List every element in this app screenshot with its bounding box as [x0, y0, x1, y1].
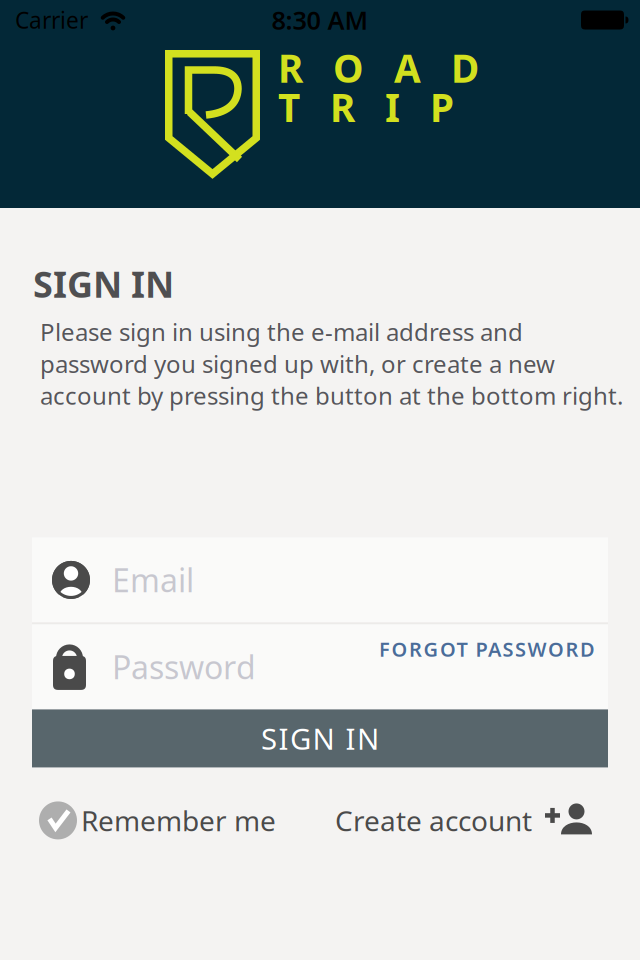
staticText: O: [333, 42, 364, 93]
staticText: R: [278, 42, 303, 93]
staticText: A: [394, 42, 421, 93]
staticText: FORGOT PASSWORD: [379, 636, 595, 662]
button[interactable]: Remember me: [39, 801, 276, 839]
staticText: Password: [112, 646, 256, 688]
staticText: 8:30 AM: [271, 3, 368, 37]
button[interactable]: FORGOT PASSWORD: [330, 654, 608, 680]
staticText: Email: [112, 559, 194, 601]
staticText: Remember me: [81, 802, 276, 839]
button[interactable]: Password: [32, 643, 256, 691]
staticText: SIGN IN: [33, 260, 174, 308]
staticText: Please sign in using the e-mail address …: [40, 316, 623, 411]
staticText: R: [330, 81, 355, 133]
staticText: SIGN IN: [261, 719, 379, 758]
staticText: D: [451, 42, 479, 93]
button[interactable]: Email: [32, 537, 608, 622]
staticText: Carrier: [15, 5, 88, 35]
button[interactable]: Create account: [335, 802, 592, 839]
staticText: T: [278, 81, 300, 133]
button[interactable]: SIGN IN: [32, 709, 608, 767]
staticText: Create account: [335, 802, 532, 839]
staticText: I: [385, 81, 400, 133]
staticText: P: [430, 81, 454, 133]
